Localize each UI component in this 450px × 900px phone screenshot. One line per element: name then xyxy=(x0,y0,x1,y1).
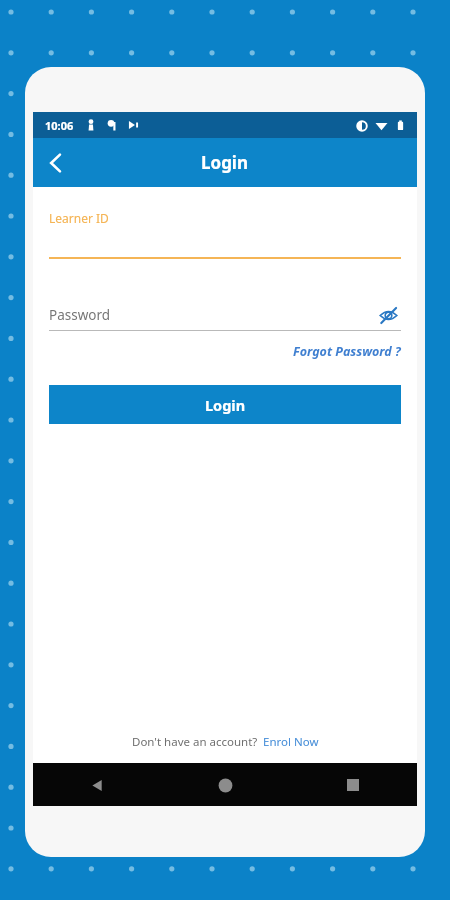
staticText: 10:06 xyxy=(45,118,74,133)
staticText: Login xyxy=(201,151,249,174)
button[interactable] xyxy=(49,245,401,259)
button[interactable]: Back xyxy=(33,140,79,186)
button[interactable]: Show password xyxy=(375,302,401,328)
button[interactable]: Recents xyxy=(336,768,370,802)
staticText: Enrol Now xyxy=(263,734,319,750)
button[interactable]: Login xyxy=(49,385,401,424)
button[interactable]: Home xyxy=(208,768,242,802)
button[interactable]: Don't have an account? xyxy=(132,734,319,750)
button[interactable]: Password xyxy=(49,300,401,330)
staticText: Password xyxy=(49,306,111,324)
staticText: Don't have an account? xyxy=(132,734,258,750)
staticText: Learner ID xyxy=(49,210,109,226)
staticText: Login xyxy=(205,395,246,415)
button[interactable]: Forgot Password ? xyxy=(293,343,401,360)
button[interactable]: Back xyxy=(80,768,114,802)
